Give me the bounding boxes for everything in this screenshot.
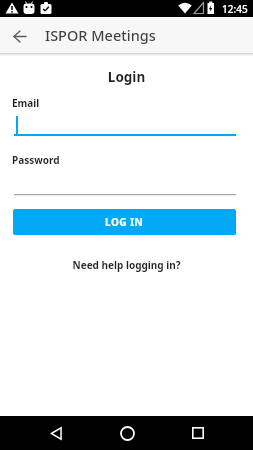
- button[interactable]: Need help logging in?: [0, 258, 253, 272]
- button[interactable]: [0, 17, 38, 53]
- staticText: ISPOR Meetings: [45, 25, 156, 45]
- button[interactable]: [28, 416, 84, 450]
- button[interactable]: [14, 168, 236, 195]
- button[interactable]: [99, 416, 155, 450]
- staticText: Email: [12, 96, 40, 110]
- staticText: LOG IN: [105, 215, 144, 229]
- button[interactable]: LOG IN: [13, 209, 236, 235]
- staticText: 12:45: [222, 2, 248, 16]
- staticText: Password: [12, 153, 60, 167]
- staticText: Login: [0, 68, 253, 86]
- button[interactable]: [170, 416, 226, 450]
- button[interactable]: [14, 109, 236, 136]
